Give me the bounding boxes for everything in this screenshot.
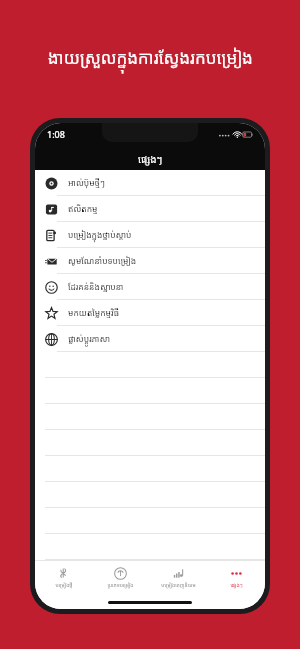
staticText: ផ្លាស់ប្តូរភាសា xyxy=(68,333,110,345)
button[interactable]: ផ្សេងៗ xyxy=(207,561,265,595)
button[interactable]: សូមណែនាំបទបម្រៀង xyxy=(35,248,265,274)
staticText: ផ្សេងៗ xyxy=(138,152,163,166)
button[interactable]: បម្រៀងថ្មី xyxy=(35,561,92,595)
staticText: ឥលិតកម្ម xyxy=(68,203,98,215)
staticText: បម្រៀងថ្មី xyxy=(55,582,73,589)
button[interactable]: បម្រៀងពេញនិយម xyxy=(149,561,207,595)
button[interactable]: អាល់ប៊ុមថ្មីៗ xyxy=(35,170,265,196)
button[interactable]: ឥលិតកម្ម xyxy=(35,196,265,222)
staticText: អាល់ប៊ុមថ្មីៗ xyxy=(68,177,105,189)
staticText: សូមណែនាំបទបម្រៀង xyxy=(68,255,137,267)
staticText: ផ្សេងៗ xyxy=(230,582,243,589)
staticText: បម្រៀងក្នុងថ្នាប់ស្តាប់ xyxy=(68,229,132,241)
button[interactable]: ប្រភេទបម្រៀង xyxy=(92,561,149,595)
staticText: ប្រភេទបម្រៀង xyxy=(107,582,134,589)
staticText: ដែរគន់និងស្នាបនា xyxy=(68,281,124,293)
button[interactable]: ផ្លាស់ប្តូរភាសា xyxy=(35,326,265,352)
button[interactable]: ដែរគន់និងស្នាបនា xyxy=(35,274,265,300)
staticText: 1:08 xyxy=(47,128,65,140)
button[interactable]: បម្រៀងក្នុងថ្នាប់ស្តាប់ xyxy=(35,222,265,248)
staticText: ងាយស្រួលក្នុងការស្វែងរកបម្រៀង xyxy=(48,46,253,69)
staticText: មកយតម្លៃកម្មវិធី xyxy=(68,307,120,319)
button[interactable]: មកយតម្លៃកម្មវិធី xyxy=(35,300,265,326)
staticText: បម្រៀងពេញនិយម xyxy=(161,582,196,589)
